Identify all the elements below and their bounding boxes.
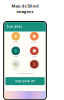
button[interactable]: Festa <box>27 46 41 57</box>
staticText: Escolha uma categoria <box>17 72 33 74</box>
staticText: Tocar para ver <box>15 79 35 83</box>
button[interactable]: Bebidas <box>27 32 41 43</box>
staticText: Comida <box>13 41 18 43</box>
button[interactable]: Flores <box>9 60 23 71</box>
button[interactable]: Comida <box>9 32 23 43</box>
staticText: Bebidas <box>31 41 37 43</box>
staticText: Flores <box>13 69 18 71</box>
staticText: Bem-vindo <box>7 25 23 28</box>
staticText: Festa <box>32 56 36 57</box>
staticText: imagens <box>16 9 33 14</box>
staticText: Noite <box>14 56 17 57</box>
button[interactable]: Noite <box>9 46 23 57</box>
staticText: Mais de 50 mil <box>11 3 38 9</box>
staticText: Doces <box>32 69 37 71</box>
button[interactable]: Tocar para ver <box>5 77 45 85</box>
button[interactable]: Doces <box>27 60 41 71</box>
